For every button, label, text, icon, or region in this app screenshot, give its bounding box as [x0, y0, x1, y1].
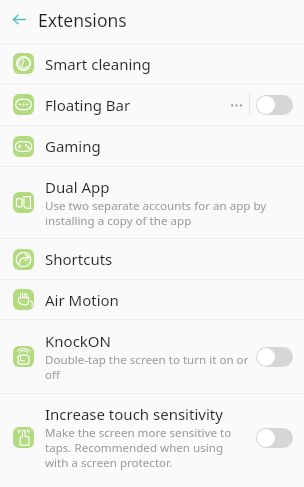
- staticText: KnockON: [45, 331, 111, 351]
- button[interactable]: Shortcuts: [0, 239, 304, 279]
- staticText: Air Motion: [45, 290, 119, 310]
- button[interactable]: Air Motion: [0, 280, 304, 319]
- button[interactable]: Toggle Increase touch sensitivity: [256, 428, 293, 448]
- button[interactable]: Floating Bar: [0, 84, 304, 125]
- staticText: Shortcuts: [45, 249, 113, 269]
- staticText: Dual App: [45, 177, 110, 197]
- staticText: Double-tap the screen to turn it on or o…: [45, 352, 256, 383]
- button[interactable]: Increase touch sensitivity: [0, 394, 304, 481]
- button[interactable]: Gaming: [0, 126, 304, 166]
- staticText: Use two separate accounts for an app by …: [45, 198, 293, 229]
- button[interactable]: KnockON: [0, 320, 304, 393]
- staticText: Extensions: [38, 8, 127, 32]
- button[interactable]: Toggle Floating Bar: [256, 95, 293, 115]
- button[interactable]: Smart cleaning: [0, 44, 304, 83]
- button[interactable]: Dual App: [0, 167, 304, 238]
- staticText: Smart cleaning: [45, 54, 151, 74]
- button[interactable]: Toggle KnockON: [256, 347, 293, 367]
- staticText: Floating Bar: [45, 95, 131, 115]
- staticText: Increase touch sensitivity: [45, 404, 223, 424]
- staticText: Gaming: [45, 136, 101, 156]
- button[interactable]: More options: [223, 94, 249, 116]
- button[interactable]: Back: [0, 3, 38, 35]
- staticText: Make the screen more sensitive to taps. …: [45, 425, 248, 471]
